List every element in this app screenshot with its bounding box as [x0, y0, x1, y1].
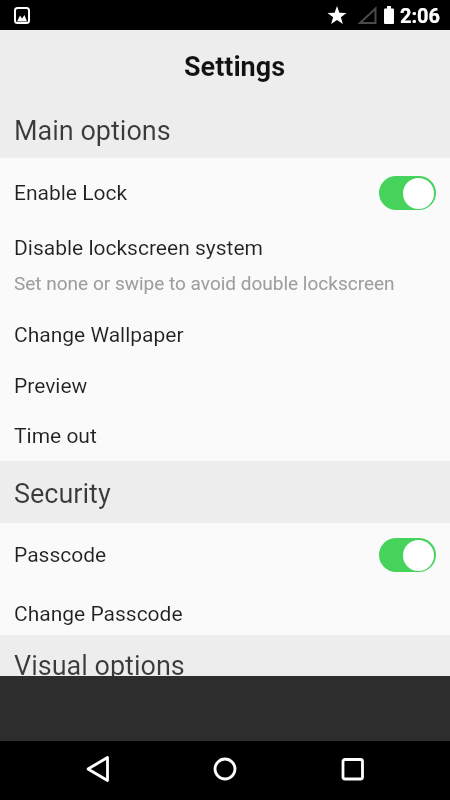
button[interactable]: Passcode — [0, 523, 450, 587]
staticText: Passcode — [14, 543, 107, 568]
staticText: Preview — [14, 374, 88, 399]
button[interactable] — [0, 741, 150, 800]
staticText: Security — [14, 478, 111, 510]
staticText: Main options — [14, 115, 171, 147]
staticText: Set none or swipe to avoid double locksc… — [14, 272, 395, 294]
staticText: Settings — [184, 51, 286, 83]
button[interactable] — [379, 538, 436, 572]
staticText: Visual options — [14, 650, 185, 676]
button[interactable]: Preview — [0, 361, 450, 412]
staticText: Disable lockscreen system — [14, 236, 263, 261]
button[interactable] — [379, 176, 436, 210]
button[interactable]: Change Wallpaper — [0, 310, 450, 361]
staticText: Time out — [14, 424, 97, 449]
staticText: Change Wallpaper — [14, 323, 184, 348]
button[interactable] — [300, 741, 450, 800]
staticText: 2:06 — [400, 4, 441, 27]
button[interactable]: Enable Lock — [0, 158, 450, 228]
button[interactable]: Disable lockscreen system — [0, 228, 450, 310]
staticText: Enable Lock — [14, 181, 128, 206]
button[interactable]: Change Passcode — [0, 587, 450, 635]
button[interactable]: Time out — [0, 412, 450, 461]
button[interactable] — [150, 741, 300, 800]
staticText: Change Passcode — [14, 602, 183, 627]
